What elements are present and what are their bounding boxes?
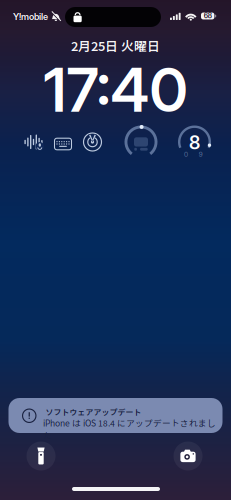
button[interactable]: Flashlight (24, 439, 58, 473)
staticText: Y!mobile (13, 11, 48, 22)
button[interactable]: Voice Memos (18, 127, 48, 157)
staticText: 0 (184, 150, 188, 158)
button[interactable]: Car status (123, 124, 159, 160)
staticText: iPhone は iOS 18.4 にアップデートされました (43, 416, 216, 441)
button[interactable]: Find My (77, 127, 107, 157)
staticText: 68 (204, 11, 212, 20)
staticText: ソフトウェアアップデート (45, 406, 141, 418)
button[interactable]: ソフトウェアアップデート (8, 398, 222, 433)
staticText: 17:40 (43, 54, 187, 126)
staticText: 2月25日 火曜日 (71, 36, 160, 55)
button[interactable]: Camera (171, 439, 205, 473)
staticText: 9 (199, 150, 203, 158)
staticText: 8 (189, 131, 200, 154)
button[interactable]: Battery level (176, 124, 212, 160)
button[interactable]: Keyboard (48, 129, 78, 159)
